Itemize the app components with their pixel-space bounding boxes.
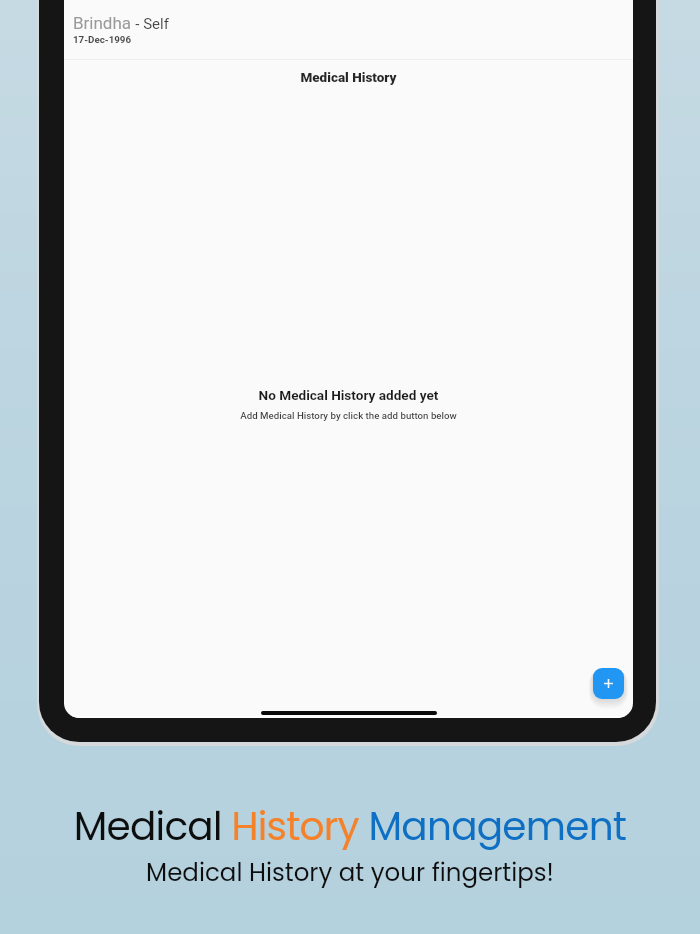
staticText: Medical History at your fingertips! xyxy=(0,855,700,889)
staticText: No Medical History added yet xyxy=(64,387,633,403)
button[interactable]: Add medical history xyxy=(593,668,624,699)
staticText: Brindha - Self xyxy=(73,13,169,33)
staticText: Medical History xyxy=(64,69,633,85)
staticText: Medical History Management xyxy=(0,799,700,854)
staticText: Add Medical History by click the add but… xyxy=(64,410,633,421)
staticText: 17-Dec-1996 xyxy=(73,34,132,45)
button[interactable]: Brindha - Self xyxy=(64,0,633,59)
